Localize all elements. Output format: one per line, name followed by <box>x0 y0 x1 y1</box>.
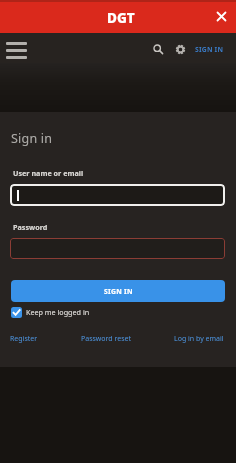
button[interactable]: SIGN IN <box>191 34 236 64</box>
button[interactable] <box>212 7 230 25</box>
staticText: SIGN IN <box>104 287 133 296</box>
button[interactable]: Register <box>10 334 38 344</box>
button[interactable] <box>147 38 169 60</box>
staticText: User name or email <box>13 168 84 178</box>
staticText: Sign in <box>11 130 53 147</box>
staticText: Password <box>13 222 48 232</box>
button[interactable]: SIGN IN <box>11 280 225 302</box>
button[interactable]: Keep me logged in <box>11 306 90 318</box>
button[interactable] <box>10 184 225 206</box>
button[interactable] <box>169 38 191 60</box>
button[interactable] <box>10 238 225 259</box>
button[interactable]: Log in by email <box>174 334 224 344</box>
staticText: DGT <box>107 9 135 27</box>
button[interactable]: Password reset <box>81 334 132 344</box>
staticText: Keep me logged in <box>26 307 90 317</box>
staticText: SIGN IN <box>195 45 224 54</box>
button[interactable] <box>2 36 30 64</box>
